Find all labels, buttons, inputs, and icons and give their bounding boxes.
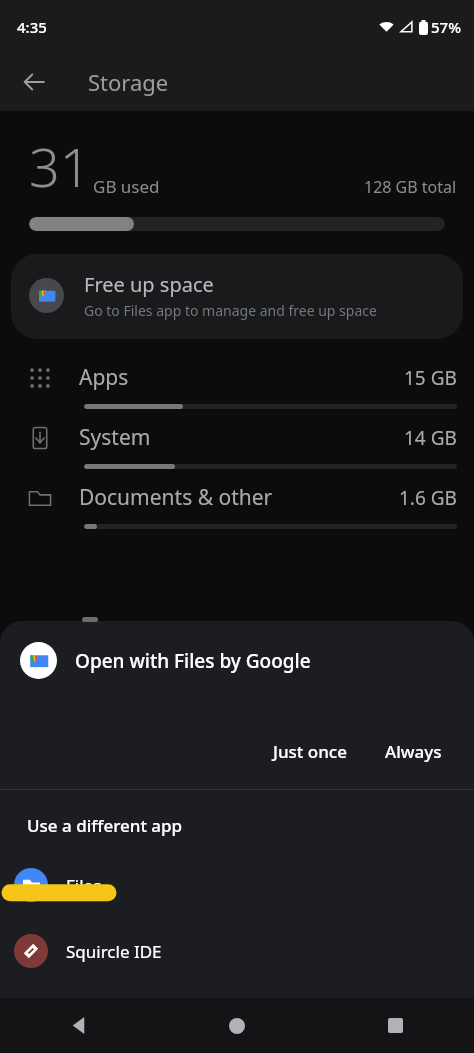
button[interactable]: Just once [261,732,359,771]
button[interactable]: Back [0,998,158,1053]
staticText: Squircle IDE [66,940,162,963]
staticText: GB used [93,175,160,198]
button[interactable]: Home [158,998,316,1053]
button[interactable]: Open with Files by Google [0,642,474,679]
staticText: Free up space [84,271,214,298]
staticText: Go to Files app to manage and free up sp… [84,301,377,320]
staticText: 1.6 GB [399,485,457,511]
staticText: 4:35 [17,17,47,37]
staticText: Open with Files by Google [75,648,311,674]
button[interactable]: Back [13,61,55,103]
staticText: 57% [431,17,461,37]
staticText: System [79,423,151,452]
staticText: Documents & other [79,483,273,512]
staticText: 128 GB total [364,176,457,198]
button[interactable]: Squircle IDE [0,930,474,972]
button[interactable]: Files [0,864,474,906]
staticText: Use a different app [27,814,183,837]
button[interactable]: Apps [0,353,474,413]
button[interactable]: Recent apps [316,998,474,1053]
button[interactable]: Free up space [11,254,463,339]
staticText: Apps [79,363,129,392]
button[interactable]: Always [373,732,454,771]
staticText: Files [66,874,102,897]
staticText: 14 GB [404,425,457,451]
staticText: Storage [88,67,169,97]
staticText: 15 GB [404,365,457,391]
staticText: 31 [29,129,91,203]
button[interactable]: System [0,413,474,473]
staticText: Just once [273,740,347,763]
staticText: Always [385,740,442,763]
button[interactable]: Documents & other [0,473,474,533]
